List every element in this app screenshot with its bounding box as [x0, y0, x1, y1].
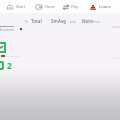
- staticText: Pay: [71, 4, 79, 10]
- staticText: Sm: [51, 18, 58, 24]
- staticText: Have: [45, 4, 55, 10]
- staticText: n/a: [70, 19, 76, 24]
- button[interactable]: Start: [7, 0, 26, 13]
- staticText: Note: [82, 18, 93, 24]
- staticText: Loans: [99, 4, 111, 10]
- button[interactable]: Pay: [63, 0, 79, 13]
- button[interactable]: Have: [36, 0, 55, 13]
- staticText: '%: [24, 19, 29, 24]
- staticText: Total: [91, 19, 100, 24]
- button[interactable]: Selected cell: [0, 42, 6, 53]
- staticText: —: [100, 19, 104, 24]
- staticText: Start: [16, 4, 26, 10]
- staticText: 2: [7, 60, 12, 72]
- staticText: Total: [31, 18, 42, 24]
- staticText: Avg: [58, 18, 66, 24]
- button[interactable]: Loans: [90, 0, 111, 13]
- staticText: Income: [0, 27, 15, 32]
